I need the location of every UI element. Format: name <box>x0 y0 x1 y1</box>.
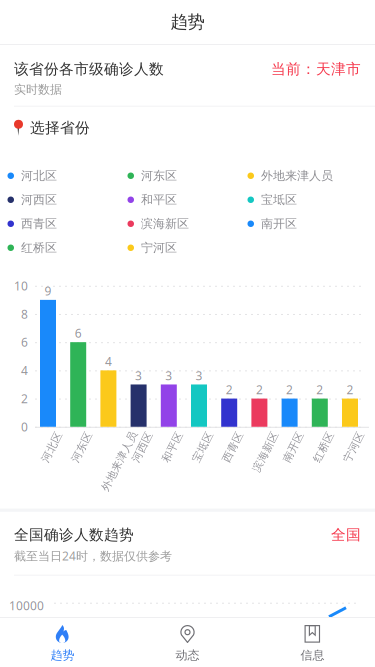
button[interactable]: 信息 <box>250 618 375 667</box>
staticText: 4 <box>105 353 112 369</box>
staticText: 该省份各市级确诊人数 <box>14 60 164 78</box>
staticText: 3 <box>135 367 142 383</box>
staticText: 河西区 <box>126 440 159 453</box>
staticText: 6 <box>21 334 28 350</box>
staticText: 外地来津人员 <box>86 455 152 468</box>
staticText: 实时数据 <box>14 82 62 97</box>
staticText: 2 <box>21 391 28 406</box>
staticText: 南开区 <box>277 440 310 453</box>
staticText: 4 <box>21 362 28 378</box>
staticText: 当前：天津市 <box>271 60 361 78</box>
staticText: 和平区 <box>156 440 189 453</box>
staticText: 2 <box>346 382 353 397</box>
staticText: 趋势 <box>50 648 74 663</box>
staticText: 宁河区 <box>141 240 177 255</box>
staticText: 宁河区 <box>337 440 370 453</box>
staticText: 和平区 <box>141 192 177 207</box>
staticText: 信息 <box>300 648 324 663</box>
staticText: 8 <box>21 306 28 322</box>
staticText: 宝坻区 <box>186 440 219 453</box>
button[interactable]: 动态 <box>125 618 250 667</box>
staticText: 全国 <box>331 526 361 544</box>
staticText: 趋势 <box>170 11 204 33</box>
staticText: 0 <box>21 419 28 435</box>
staticText: 河北区 <box>35 440 68 453</box>
staticText: 2 <box>316 382 323 397</box>
staticText: 红桥区 <box>307 440 340 453</box>
staticText: 宝坻区 <box>261 192 297 207</box>
staticText: 9 <box>44 283 51 299</box>
staticText: 3 <box>165 367 172 383</box>
button[interactable]: 趋势 <box>0 618 125 667</box>
staticText: 外地来津人员 <box>261 168 333 183</box>
staticText: 红桥区 <box>21 240 57 255</box>
staticText: 南开区 <box>261 216 297 231</box>
button[interactable]: 全国 <box>331 526 361 544</box>
staticText: 2 <box>286 382 293 397</box>
staticText: 2 <box>256 382 263 397</box>
staticText: 滨海新区 <box>141 216 189 231</box>
staticText: 3 <box>195 367 202 383</box>
staticText: 滨海新区 <box>243 445 287 458</box>
staticText: 河东区 <box>65 440 98 453</box>
staticText: 10 <box>14 278 28 294</box>
staticText: 西青区 <box>21 216 57 231</box>
staticText: 选择省份 <box>30 119 90 137</box>
staticText: 10000 <box>9 598 44 614</box>
staticText: 河东区 <box>141 168 177 183</box>
staticText: 西青区 <box>216 440 249 453</box>
staticText: 6 <box>75 325 82 341</box>
staticText: 河西区 <box>21 192 57 207</box>
staticText: 全国确诊人数趋势 <box>14 526 134 544</box>
staticText: 截至当日24时，数据仅供参考 <box>14 548 172 564</box>
button[interactable]: 选择省份 <box>0 107 375 149</box>
staticText: 河北区 <box>21 168 57 183</box>
staticText: 动态 <box>175 648 199 663</box>
staticText: 2 <box>226 382 233 397</box>
